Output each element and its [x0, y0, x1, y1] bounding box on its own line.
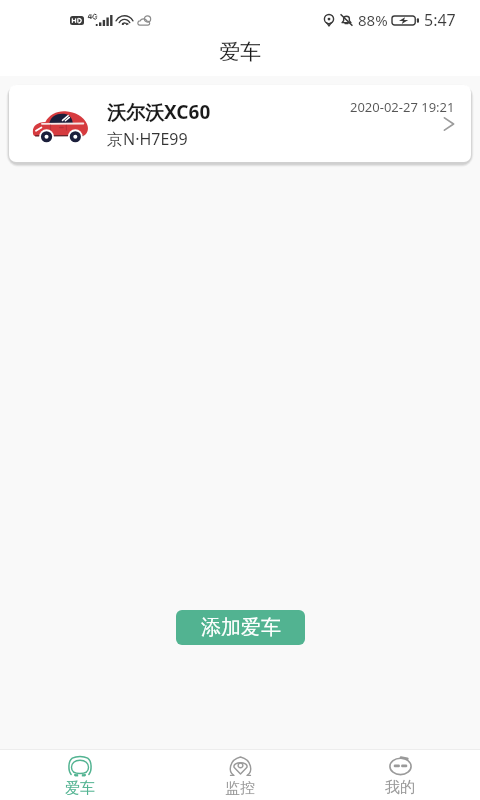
staticText: 爱车 — [219, 39, 261, 65]
staticText: 88% — [358, 10, 388, 30]
staticText: 京N·H7E99 — [107, 128, 188, 150]
button[interactable]: 我的 — [320, 750, 480, 797]
button[interactable]: 爱车 — [0, 750, 160, 798]
button[interactable]: 监控 — [160, 750, 320, 798]
staticText: 我的 — [385, 778, 415, 797]
staticText: 爱车 — [65, 779, 95, 798]
button[interactable]: 添加爱车 — [176, 610, 305, 645]
staticText: 监控 — [225, 779, 255, 798]
staticText: 2020-02-27 19:21 — [350, 98, 455, 116]
staticText: 沃尔沃XC60 — [107, 99, 211, 125]
button[interactable]: 沃尔沃XC60 — [9, 85, 471, 162]
button[interactable]: Open vehicle details — [437, 111, 461, 137]
staticText: 添加爱车 — [201, 615, 281, 640]
staticText: 5:47 — [424, 9, 456, 31]
